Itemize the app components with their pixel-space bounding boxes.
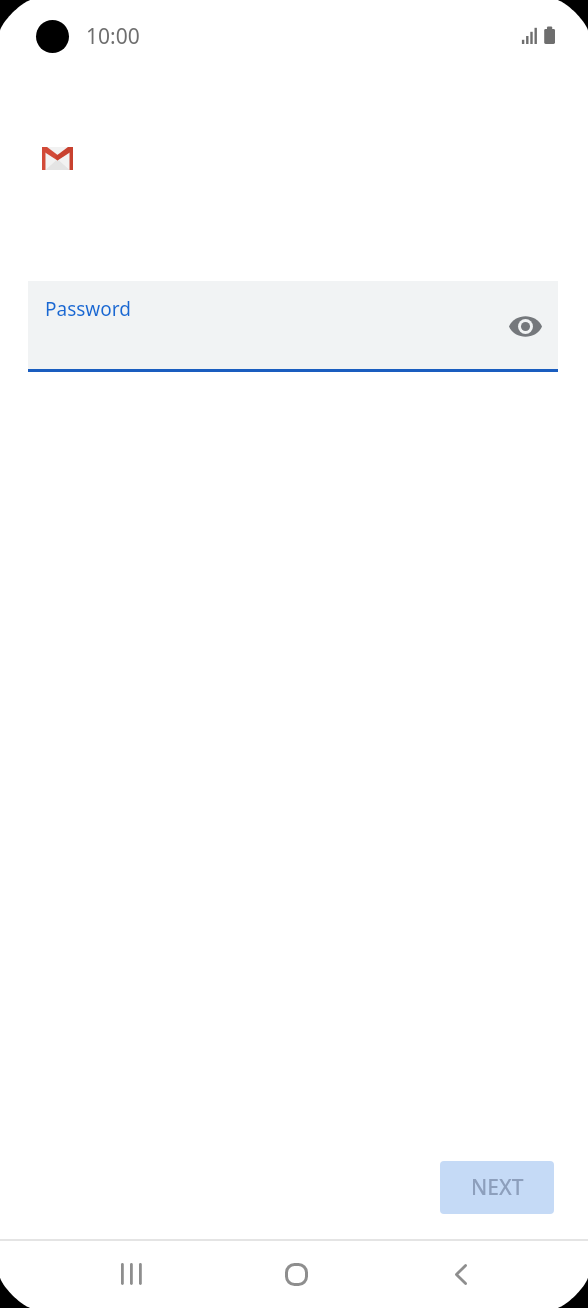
button[interactable]: Back: [421, 1240, 501, 1308]
button[interactable]: Show password: [501, 302, 549, 350]
button[interactable]: Recent apps: [91, 1240, 171, 1308]
button[interactable]: Home: [256, 1240, 336, 1308]
staticText: Password: [45, 296, 131, 322]
button[interactable]: NEXT: [440, 1161, 554, 1214]
button[interactable]: Password: [28, 281, 558, 372]
staticText: NEXT: [471, 1173, 524, 1202]
staticText: 10:00: [86, 22, 140, 51]
